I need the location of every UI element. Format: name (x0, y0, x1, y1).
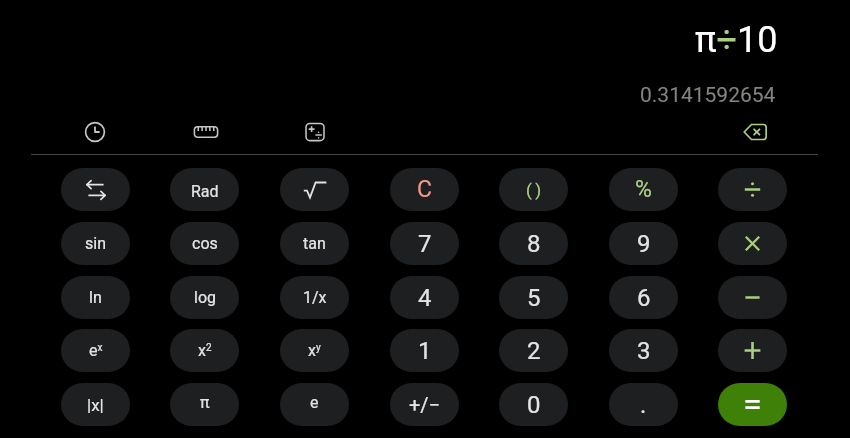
staticText: log (194, 288, 216, 307)
staticText: 4 (418, 284, 432, 312)
button[interactable]: log (170, 276, 239, 319)
button[interactable]: Calculator (293, 110, 337, 154)
staticText: 6 (637, 284, 651, 312)
button[interactable]: ( ) (499, 168, 568, 211)
button[interactable]: C (390, 168, 459, 211)
button[interactable]: 5 (499, 276, 568, 319)
button[interactable]: tan (280, 222, 349, 265)
button[interactable]: 2 (499, 329, 568, 372)
staticText: 2 (527, 337, 541, 365)
staticText: +/− (409, 393, 441, 416)
staticText: ln (89, 288, 102, 307)
staticText: 8 (527, 230, 541, 258)
staticText: 3 (637, 337, 651, 365)
staticText: 1 (418, 337, 432, 365)
staticText: e (310, 393, 319, 412)
button[interactable]: π (170, 383, 239, 426)
staticText: x2 (198, 341, 212, 360)
button[interactable]: +/− (390, 383, 459, 426)
staticText: ex (89, 341, 103, 360)
staticText: cos (192, 234, 218, 253)
staticText: . (640, 391, 647, 419)
button[interactable]: 1 (390, 329, 459, 372)
staticText: π÷10 (695, 19, 778, 61)
staticText: 5 (527, 284, 541, 312)
button[interactable]: Switch (61, 168, 130, 211)
staticText: 0.3141592654 (640, 83, 776, 108)
staticText: % (635, 176, 652, 203)
staticText: Rad (191, 182, 219, 201)
staticText: 1/x (303, 288, 327, 307)
button[interactable]: 6 (609, 276, 678, 319)
button[interactable]: Rad (170, 168, 239, 211)
button[interactable]: % (609, 168, 678, 211)
button[interactable]: Backspace (733, 110, 777, 154)
button[interactable]: ln (61, 276, 130, 319)
button[interactable]: Equals (718, 383, 787, 426)
staticText: 9 (637, 230, 651, 258)
button[interactable]: ex (61, 329, 130, 372)
button[interactable]: Square root (280, 168, 349, 211)
button[interactable]: Unit converter (184, 110, 228, 154)
button[interactable]: xy (280, 329, 349, 372)
button[interactable]: Minus (718, 276, 787, 319)
staticText: xy (308, 341, 321, 360)
button[interactable]: 3 (609, 329, 678, 372)
button[interactable]: 0 (499, 383, 568, 426)
button[interactable]: Multiply (718, 222, 787, 265)
button[interactable]: sin (61, 222, 130, 265)
button[interactable]: |x| (61, 383, 130, 426)
button[interactable]: 7 (390, 222, 459, 265)
button[interactable]: cos (170, 222, 239, 265)
staticText: sin (85, 234, 106, 253)
staticText: 7 (418, 230, 432, 258)
staticText: 0 (527, 391, 541, 419)
staticText: ( ) (526, 180, 542, 200)
button[interactable]: History (73, 110, 117, 154)
button[interactable]: 8 (499, 222, 568, 265)
button[interactable]: x2 (170, 329, 239, 372)
button[interactable]: Divide (718, 168, 787, 211)
staticText: |x| (87, 395, 104, 415)
staticText: tan (303, 234, 326, 253)
button[interactable]: Plus (718, 329, 787, 372)
button[interactable]: e (280, 383, 349, 426)
button[interactable]: 9 (609, 222, 678, 265)
button[interactable]: 1/x (280, 276, 349, 319)
button[interactable]: . (609, 383, 678, 426)
staticText: π (200, 393, 210, 412)
staticText: C (417, 176, 432, 203)
button[interactable]: 4 (390, 276, 459, 319)
